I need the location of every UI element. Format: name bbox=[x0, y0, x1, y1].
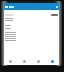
button[interactable] bbox=[51, 14, 58, 16]
button[interactable]: Menu bbox=[5, 5, 8, 8]
button[interactable]: Tab 1 bbox=[17, 58, 31, 65]
button[interactable]: Tab 0 bbox=[4, 58, 17, 65]
button[interactable] bbox=[5, 32, 58, 33]
button[interactable] bbox=[5, 34, 58, 35]
button[interactable]: Tab 2 bbox=[31, 58, 45, 65]
button[interactable] bbox=[5, 38, 58, 39]
button[interactable]: Search bbox=[55, 5, 58, 8]
button[interactable]: Tab 3 bbox=[45, 58, 59, 65]
button[interactable] bbox=[5, 40, 58, 41]
button[interactable] bbox=[5, 36, 58, 37]
